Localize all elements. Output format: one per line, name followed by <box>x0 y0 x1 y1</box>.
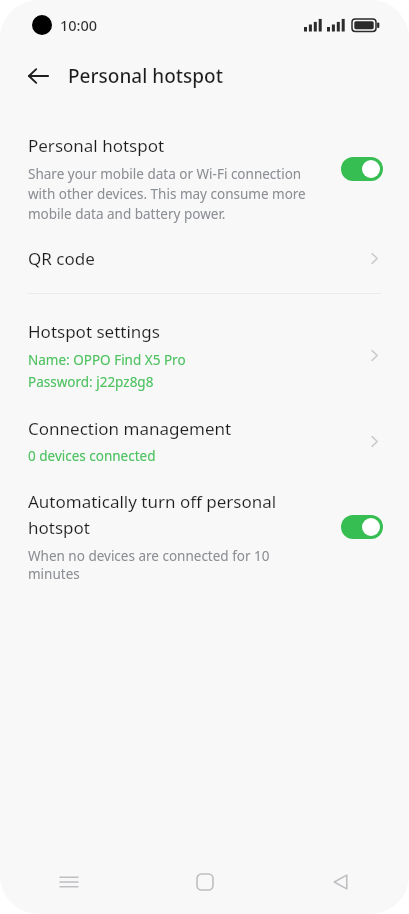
button[interactable]: Home <box>137 850 273 914</box>
button[interactable]: Personal hotspot <box>0 134 409 223</box>
button[interactable]: Back <box>273 850 409 914</box>
staticText: Automatically turn off personal hotspot <box>28 490 319 539</box>
staticText: Connection management <box>28 417 232 440</box>
staticText: Hotspot settings <box>28 320 160 343</box>
staticText: Personal hotspot <box>68 63 223 89</box>
staticText: QR code <box>28 247 366 270</box>
button[interactable]: Toggle switch, on <box>341 157 383 181</box>
staticText: 0 devices connected <box>28 447 156 465</box>
button[interactable]: QR code <box>0 247 409 270</box>
staticText: Name: OPPO Find X5 Pro <box>28 351 186 369</box>
button[interactable]: Connection management <box>0 417 409 465</box>
button[interactable]: Back <box>18 56 58 96</box>
button[interactable]: Toggle switch, on <box>341 515 383 539</box>
staticText: Password: j22pz8g8 <box>28 373 154 391</box>
staticText: Share your mobile data or Wi-Fi connecti… <box>28 165 327 223</box>
button[interactable]: Hotspot settings <box>0 320 409 391</box>
staticText: When no devices are connected for 10 min… <box>28 547 319 583</box>
button[interactable]: Recent apps <box>0 850 137 914</box>
staticText: 10:00 <box>60 15 98 35</box>
button[interactable]: Automatically turn off personal hotspot <box>0 490 409 583</box>
staticText: Personal hotspot <box>28 134 165 157</box>
